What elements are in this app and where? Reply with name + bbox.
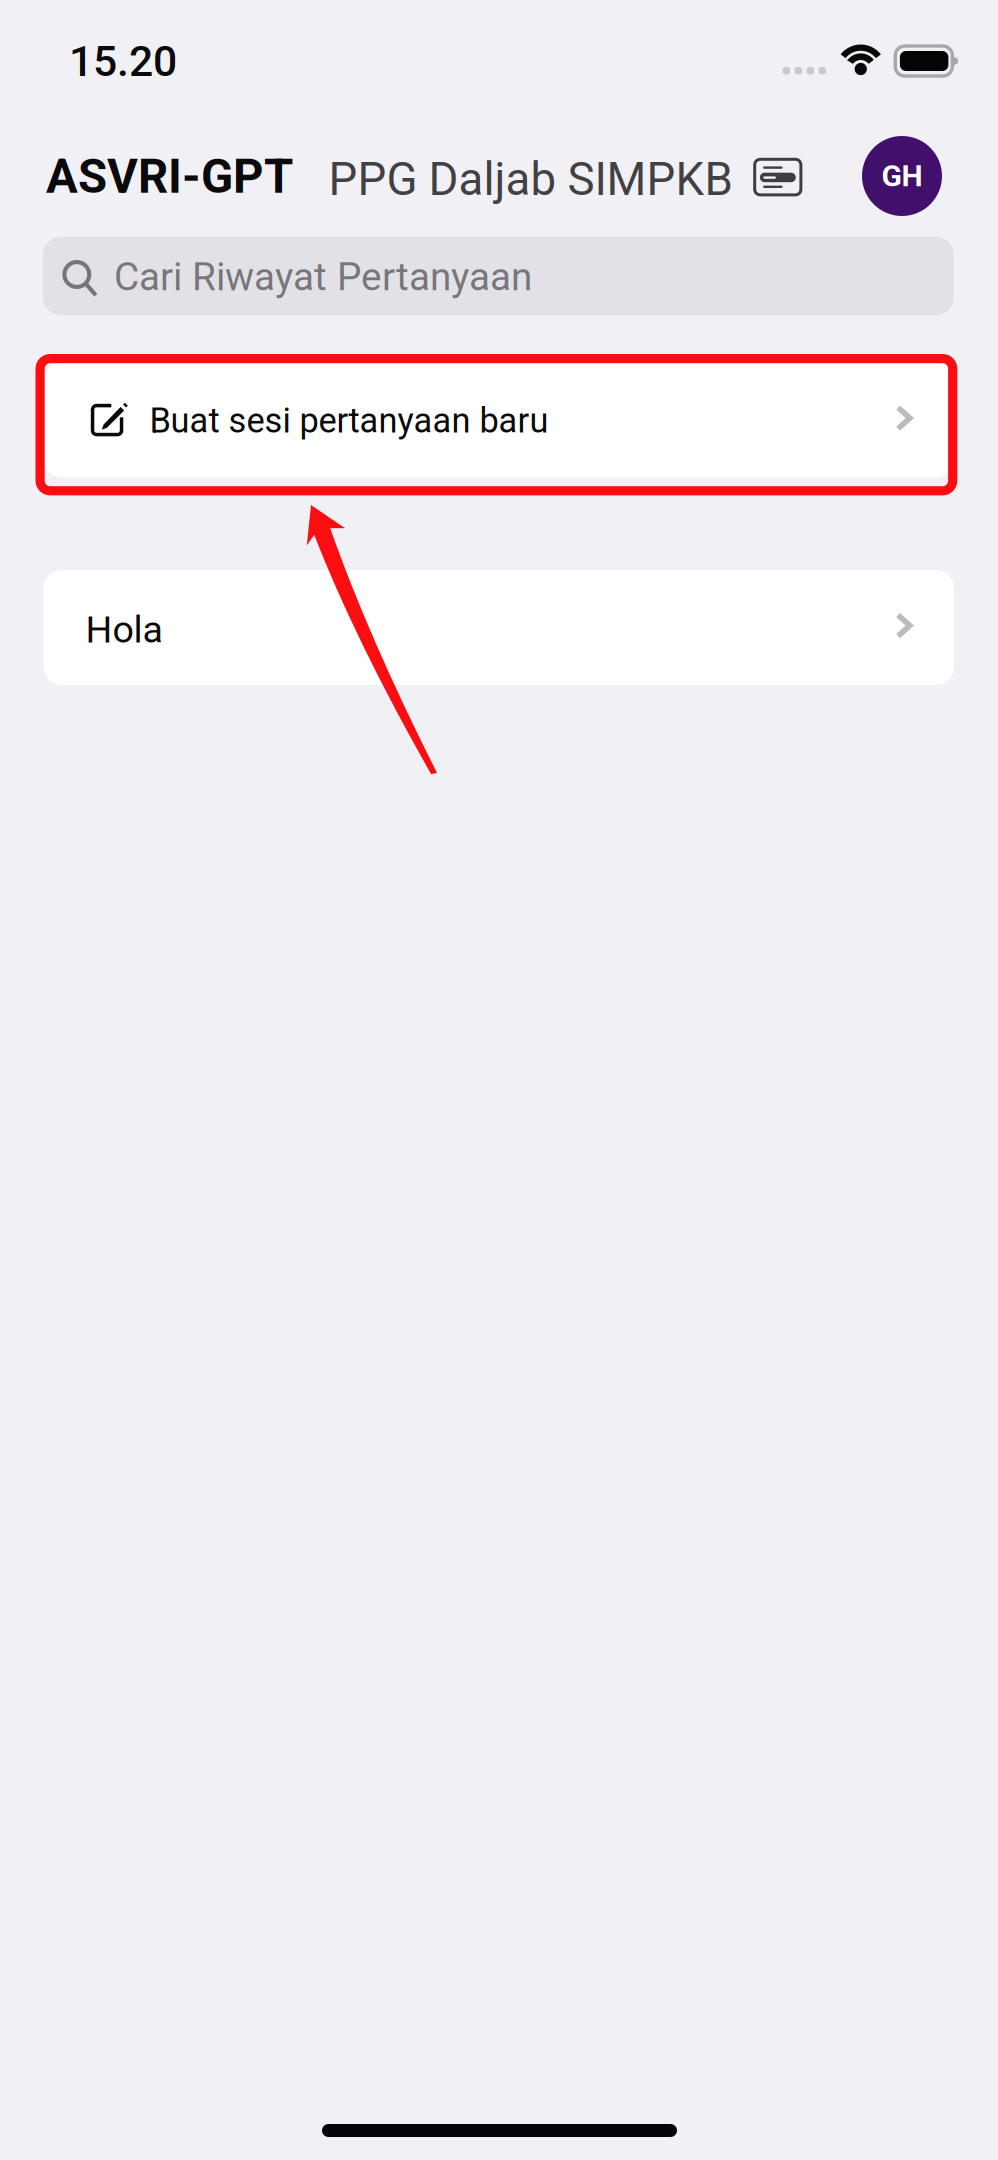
staticText: ASVRI-GPT — [46, 149, 293, 204]
staticText: 15.20 — [69, 36, 177, 86]
staticText: GH — [881, 158, 922, 194]
button[interactable]: Cari Riwayat Pertanyaan — [43, 237, 954, 315]
staticText: Cari Riwayat Pertanyaan — [114, 254, 532, 300]
staticText: PPG Daljab SIMPKB — [328, 153, 732, 206]
button[interactable]: Hola — [43, 570, 954, 685]
button[interactable]: ASVRI-GPT — [46, 145, 296, 207]
button[interactable]: Buat sesi pertanyaan baru — [43, 362, 954, 477]
staticText: Buat sesi pertanyaan baru — [149, 401, 548, 441]
button[interactable]: PPG Daljab SIMPKB — [328, 145, 738, 207]
staticText: Hola — [85, 607, 162, 652]
button[interactable]: Akun GH — [862, 136, 942, 216]
button[interactable]: Riwayat — [747, 146, 809, 208]
